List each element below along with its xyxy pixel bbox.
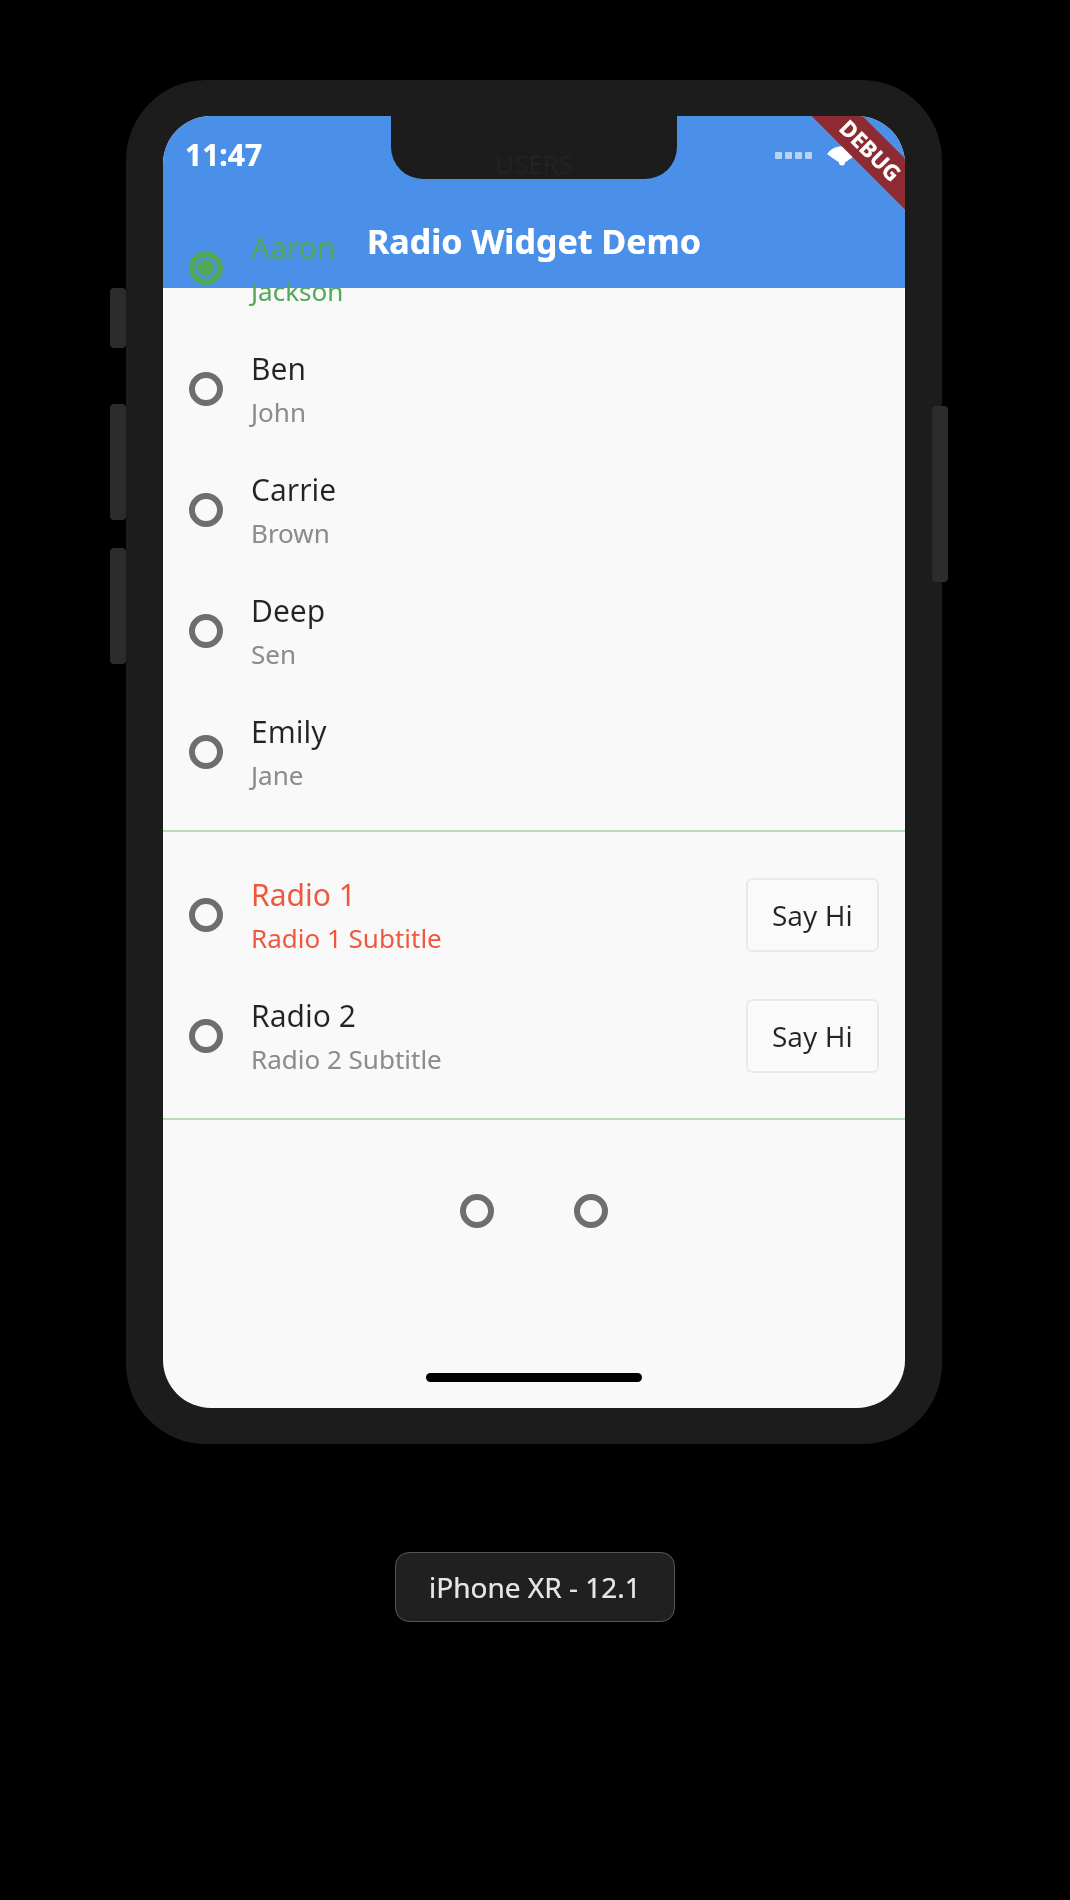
staticText: Radio 1 Subtitle xyxy=(251,920,442,955)
staticText: Jane xyxy=(251,757,304,792)
button[interactable]: Say Hi xyxy=(746,999,879,1073)
staticText: Brown xyxy=(251,515,330,550)
button[interactable]: Option A xyxy=(442,1176,512,1246)
staticText: Radio 2 xyxy=(251,995,356,1036)
button[interactable]: Deep xyxy=(163,570,905,691)
staticText: Aaron xyxy=(251,227,336,268)
staticText: Carrie xyxy=(251,469,337,510)
staticText: 11:47 xyxy=(185,134,263,175)
button[interactable]: Say Hi xyxy=(746,878,879,952)
staticText: DEBUG xyxy=(833,116,905,187)
staticText: Emily xyxy=(251,711,327,752)
button[interactable]: Option B xyxy=(556,1176,626,1246)
staticText: Ben xyxy=(251,348,306,389)
button[interactable]: Radio 1 xyxy=(163,854,905,975)
staticText: Say Hi xyxy=(772,896,853,934)
button[interactable]: Carrie xyxy=(163,449,905,570)
staticText: Sen xyxy=(251,636,297,671)
button[interactable]: Emily xyxy=(163,691,905,812)
button[interactable]: Ben xyxy=(163,328,905,449)
staticText: Deep xyxy=(251,590,326,631)
staticText: Jackson xyxy=(251,273,344,308)
button[interactable]: Aaron xyxy=(163,207,905,328)
staticText: Radio Widget Demo xyxy=(367,218,701,264)
staticText: Radio 2 Subtitle xyxy=(251,1041,442,1076)
staticText: Radio 1 xyxy=(251,874,356,915)
staticText: USERS xyxy=(495,146,574,181)
staticText: John xyxy=(251,394,306,429)
button[interactable]: Radio 2 xyxy=(163,975,905,1096)
staticText: iPhone XR - 12.1 xyxy=(429,1568,641,1606)
staticText: Say Hi xyxy=(772,1017,853,1055)
